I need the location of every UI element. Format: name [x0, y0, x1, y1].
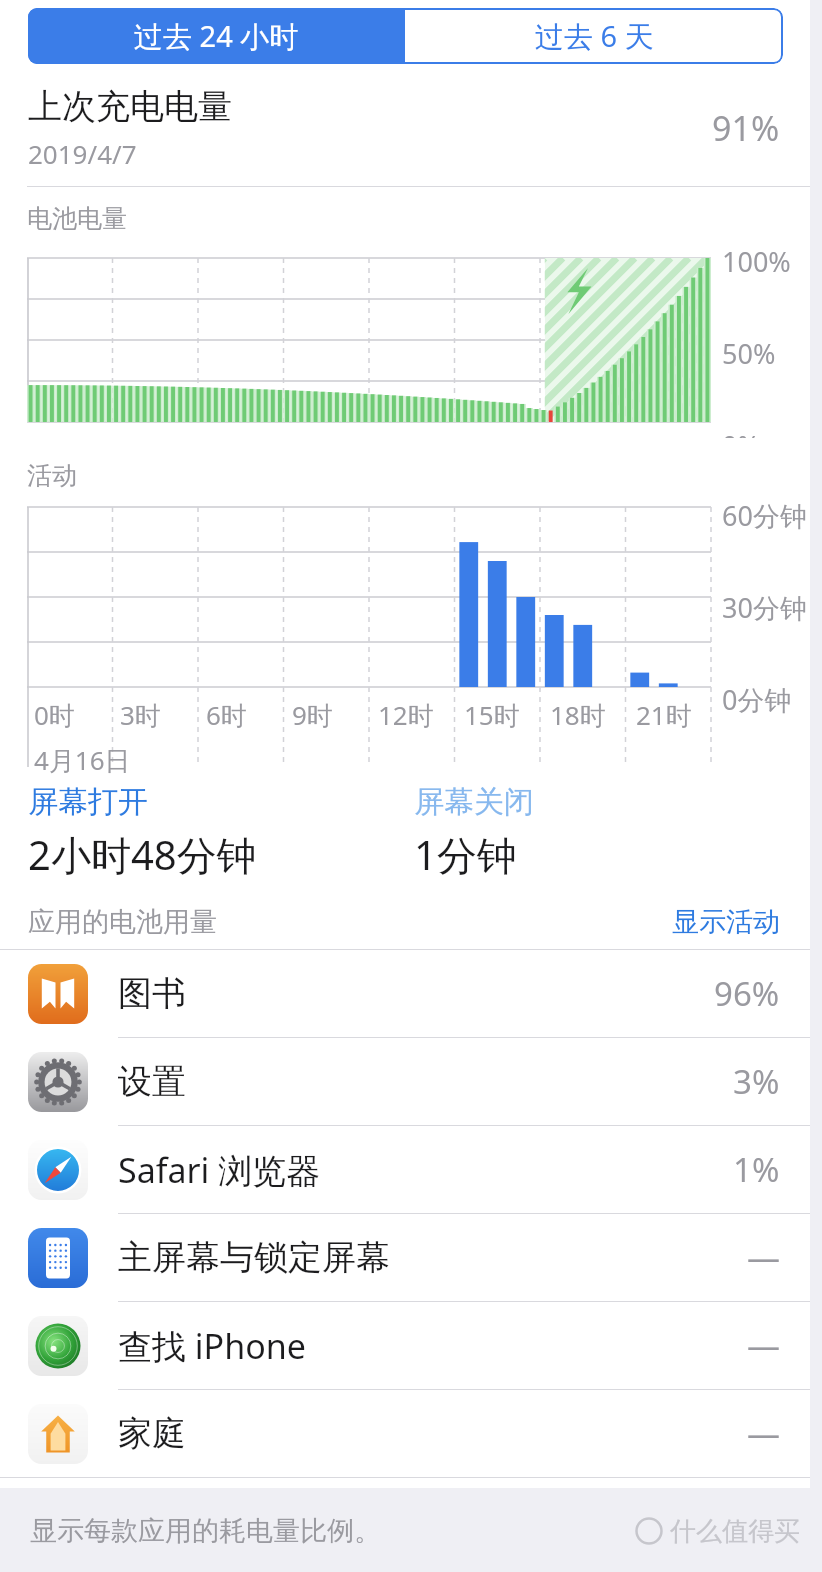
staticText: 96% — [714, 971, 780, 1016]
button[interactable]: Safari 浏览器 — [0, 1126, 822, 1213]
button[interactable]: 家庭 — [0, 1390, 822, 1477]
button[interactable]: 主屏幕与锁定屏幕 — [0, 1214, 822, 1301]
staticText: 2019/4/7 — [28, 136, 137, 171]
staticText: 显示活动 — [672, 905, 780, 939]
button[interactable]: 过去 24 小时 — [28, 8, 405, 64]
staticText: 活动 — [27, 460, 77, 491]
staticText: 100% — [722, 243, 791, 280]
staticText: 查找 iPhone — [118, 1323, 306, 1369]
staticText: 主屏幕与锁定屏幕 — [118, 1236, 390, 1279]
staticText: — — [747, 1323, 780, 1368]
staticText: 3% — [733, 1059, 780, 1104]
staticText: 图书 — [118, 972, 186, 1015]
staticText: 0时 — [34, 697, 75, 733]
button[interactable]: 显示活动 — [672, 905, 780, 939]
staticText: 30分钟 — [722, 589, 807, 626]
staticText: 应用的电池用量 — [28, 905, 217, 939]
button[interactable]: 设置 — [0, 1038, 822, 1125]
staticText: 50% — [722, 335, 776, 372]
staticText: 什么值得买 — [670, 1515, 800, 1548]
staticText: 18时 — [550, 697, 606, 733]
staticText: 设置 — [118, 1060, 186, 1103]
staticText: 0% — [722, 427, 760, 438]
button[interactable]: 过去 6 天 — [405, 8, 783, 64]
staticText: 2小时48分钟 — [28, 827, 257, 882]
staticText: 屏幕关闭 — [414, 783, 534, 821]
staticText: Safari 浏览器 — [118, 1147, 321, 1193]
staticText: 显示每款应用的耗电量比例。 — [30, 1514, 381, 1548]
staticText: 0分钟 — [722, 681, 792, 718]
staticText: 电池电量 — [27, 203, 127, 234]
staticText: 4月16日 — [34, 742, 131, 777]
staticText: 过去 24 小时 — [134, 16, 299, 56]
staticText: 9时 — [292, 697, 333, 733]
other: Logo — [635, 1517, 663, 1545]
staticText: 家庭 — [118, 1412, 186, 1455]
staticText: 屏幕打开 — [28, 783, 148, 821]
staticText: 过去 6 天 — [535, 16, 654, 56]
button[interactable]: 图书 — [0, 950, 822, 1037]
staticText: 上次充电电量 — [28, 85, 232, 128]
staticText: 12时 — [378, 697, 434, 733]
staticText: 1分钟 — [414, 827, 517, 882]
staticText: 1% — [733, 1147, 780, 1192]
staticText: 91% — [712, 105, 780, 151]
staticText: 6时 — [206, 697, 247, 733]
staticText: 15时 — [464, 697, 520, 733]
staticText: — — [747, 1411, 780, 1456]
staticText: 60分钟 — [722, 497, 807, 534]
staticText: 3时 — [120, 697, 161, 733]
button[interactable]: 查找 iPhone — [0, 1302, 822, 1389]
staticText: 21时 — [636, 697, 692, 733]
staticText: — — [747, 1235, 780, 1280]
